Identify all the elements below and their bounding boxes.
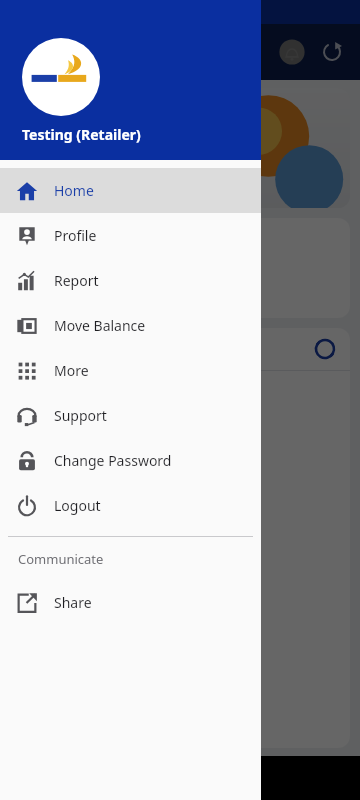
staticText: Profile <box>54 226 97 245</box>
button[interactable]: Notifications <box>272 32 312 72</box>
button[interactable]: Refresh <box>312 32 352 72</box>
staticText: Share <box>54 593 92 612</box>
button[interactable]: Piped Gas <box>10 451 350 531</box>
button[interactable]: Logout <box>0 483 261 528</box>
staticText: Testing (Retailer) <box>22 125 141 144</box>
button[interactable]: QR Scan <box>22 230 76 306</box>
button[interactable] <box>10 88 350 208</box>
staticText: Report <box>54 271 99 290</box>
button[interactable]: Change Password <box>0 438 261 483</box>
staticText: More <box>54 361 89 380</box>
staticText: Recharge <box>22 340 312 358</box>
button[interactable]: DTH <box>10 371 350 451</box>
staticText: Support <box>54 406 107 425</box>
staticText: Communicate <box>18 550 104 568</box>
button[interactable]: Move Balance <box>0 303 261 348</box>
button[interactable]: Gas Stove <box>10 611 350 691</box>
staticText: Logout <box>54 496 101 515</box>
button[interactable]: Profile <box>0 213 261 258</box>
button[interactable]: Water <box>10 531 350 611</box>
button[interactable]: Support <box>0 393 261 438</box>
staticText: QR Scan <box>26 290 73 306</box>
button[interactable]: More <box>0 348 261 393</box>
button[interactable]: Report <box>0 258 261 303</box>
button[interactable]: Home <box>0 168 261 213</box>
staticText: Move Balance <box>54 316 146 335</box>
staticText: Change Password <box>54 451 172 470</box>
button[interactable]: Refresh services <box>312 336 338 362</box>
staticText: Home <box>54 181 94 200</box>
button[interactable]: Share <box>0 580 261 625</box>
